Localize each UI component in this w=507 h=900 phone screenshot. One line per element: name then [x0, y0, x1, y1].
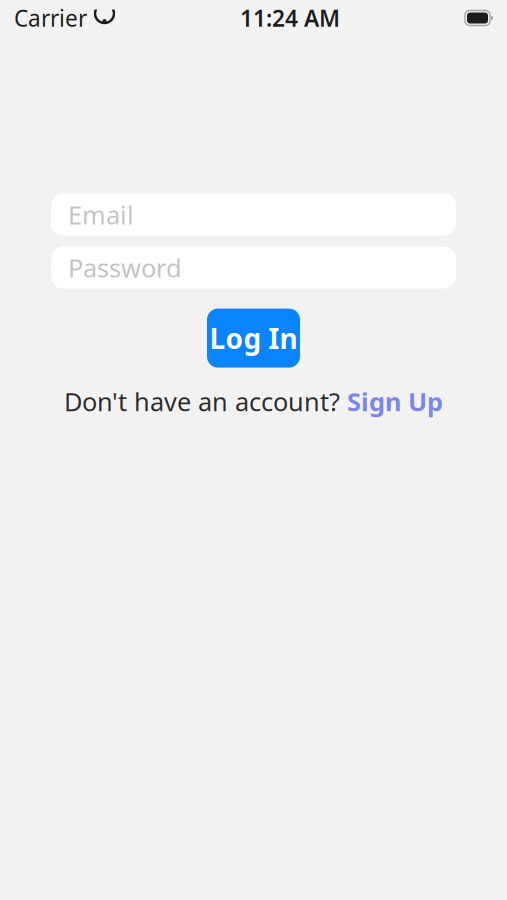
button[interactable]: Sign Up	[347, 385, 443, 418]
button[interactable]: Log In	[207, 309, 300, 368]
staticText: Log In	[209, 319, 297, 357]
staticText: Don't have an account?	[64, 385, 347, 418]
staticText: Sign Up	[347, 385, 443, 418]
staticText: Carrier	[14, 3, 87, 33]
staticText: Password	[68, 251, 182, 284]
staticText: Email	[68, 198, 134, 231]
staticText: 11:24 AM	[240, 3, 340, 33]
